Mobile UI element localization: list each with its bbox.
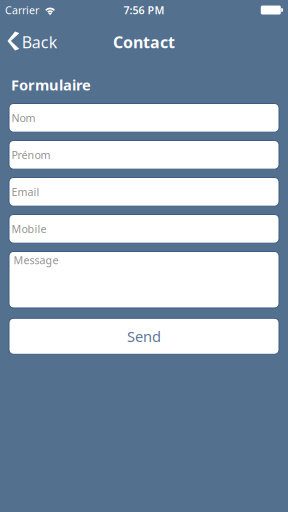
staticText: Carrier [5, 3, 39, 17]
button[interactable]: Prénom [9, 140, 279, 169]
staticText: Formulaire [11, 75, 91, 94]
button[interactable]: Message [9, 251, 279, 308]
button[interactable]: Send [9, 318, 279, 354]
staticText: Send [127, 326, 161, 346]
staticText: Back [22, 31, 58, 53]
staticText: Nom [11, 111, 35, 125]
button[interactable]: Email [9, 177, 279, 206]
staticText: Message [13, 253, 58, 267]
button[interactable]: Nom [9, 103, 279, 132]
staticText: Prénom [11, 148, 50, 162]
staticText: Mobile [11, 222, 46, 236]
button[interactable]: Mobile [9, 214, 279, 243]
staticText: 7:56 PM [123, 3, 164, 17]
staticText: Email [11, 185, 39, 199]
staticText: Contact [113, 31, 175, 53]
button[interactable]: Back [0, 20, 64, 64]
